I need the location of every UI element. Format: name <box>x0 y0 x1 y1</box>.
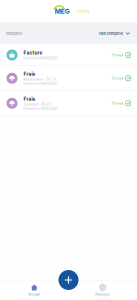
button[interactable]: Accueil <box>0 280 68 300</box>
staticText: MEG <box>55 7 70 15</box>
staticText: Envoyé le 04/05/2021 <box>23 107 57 110</box>
button[interactable]: Ajouter <box>58 270 78 290</box>
staticText: Frais <box>23 71 35 77</box>
staticText: Envoyé le 04/05/2021 <box>23 82 57 85</box>
staticText: Restauration - 34,7 € <box>23 78 56 81</box>
staticText: Envoyé <box>112 76 124 80</box>
staticText: Accueil <box>28 292 40 296</box>
button[interactable]: Réglages <box>68 280 137 300</box>
staticText: Envoyé <box>112 101 124 105</box>
button[interactable]: Frais <box>0 66 137 90</box>
staticText: SCAN <box>77 9 89 14</box>
staticText: Mon Entreprise <box>99 31 123 36</box>
staticText: Envoyé le 04/05/2021 <box>23 56 57 60</box>
staticText: Facture <box>23 50 42 56</box>
staticText: Réglages <box>95 292 110 296</box>
button[interactable]: Mon Entreprise <box>99 31 130 36</box>
button[interactable]: Facture <box>0 44 137 65</box>
staticText: Entreprise <box>6 31 22 36</box>
staticText: Frais <box>23 96 35 102</box>
staticText: Transport - 56,2 € <box>23 103 51 106</box>
button[interactable]: Frais <box>0 91 137 115</box>
staticText: Envoyé <box>112 53 124 57</box>
